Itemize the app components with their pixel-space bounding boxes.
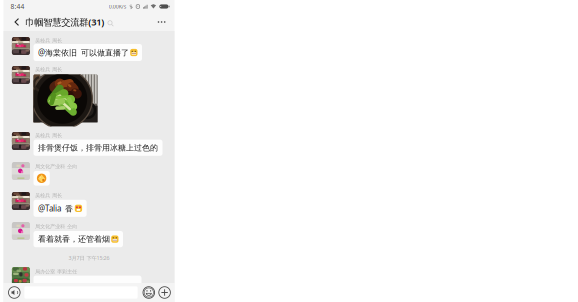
button[interactable]: Back [8,13,25,31]
button[interactable]: More options [152,15,171,29]
staticText: 8:44 [10,2,24,11]
staticText: 吴栓兵 周长 [35,66,62,73]
staticText: 看着就香，还管着烟 [38,234,110,244]
staticText: 吴栓兵 周长 [35,192,62,199]
staticText: 局文化产业科 仝向 [35,163,77,170]
staticText: 0.00K/s [109,3,127,10]
button[interactable]: Emoji [142,286,155,299]
staticText: 局文化产业科 仝向 [35,223,77,230]
staticText: @Talia 香 [38,203,73,214]
button[interactable]: More actions [158,286,171,299]
staticText: 局办公室 李彩主任 [35,268,77,275]
staticText: 吴栓兵 周长 [35,37,62,44]
staticText: 排骨煲仔饭，排骨用冰糖上过色的 [38,143,158,153]
staticText: 巾帼智慧交流群(31) [25,16,104,28]
staticText: 3月7日 下午15:26 [68,254,109,261]
staticText: 吴栓兵 周长 [35,132,62,139]
button[interactable]: Voice message [8,286,21,299]
staticText: @海棠依旧 可以做直播了 [38,47,129,58]
